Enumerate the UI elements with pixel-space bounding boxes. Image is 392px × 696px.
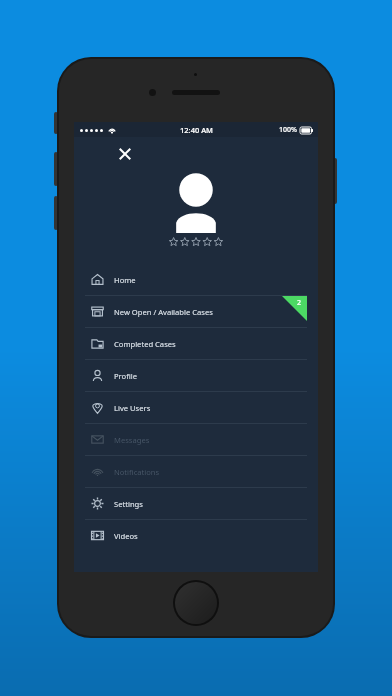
- staticText: New Open / Available Cases: [114, 307, 213, 317]
- button[interactable]: New Open / Available Cases: [85, 296, 307, 327]
- button[interactable]: Completed Cases: [85, 328, 307, 359]
- button[interactable]: Settings: [85, 488, 307, 519]
- staticText: Completed Cases: [114, 339, 176, 349]
- button[interactable]: Notifications: [85, 456, 307, 487]
- button[interactable]: Live Users: [85, 392, 307, 423]
- staticText: Settings: [114, 499, 143, 509]
- button[interactable]: Videos: [85, 520, 307, 551]
- button[interactable]: Profile: [85, 360, 307, 391]
- staticText: 2: [297, 298, 302, 308]
- staticText: Profile: [114, 371, 137, 381]
- button[interactable]: Messages: [85, 424, 307, 455]
- button[interactable]: Close: [114, 143, 136, 165]
- staticText: Messages: [114, 435, 150, 445]
- staticText: Videos: [114, 531, 138, 541]
- staticText: Notifications: [114, 467, 160, 477]
- staticText: Live Users: [114, 403, 151, 413]
- staticText: 100%: [279, 125, 297, 135]
- button[interactable]: Home: [85, 264, 307, 295]
- staticText: Home: [114, 275, 136, 285]
- staticText: 12:40 AM: [180, 125, 213, 135]
